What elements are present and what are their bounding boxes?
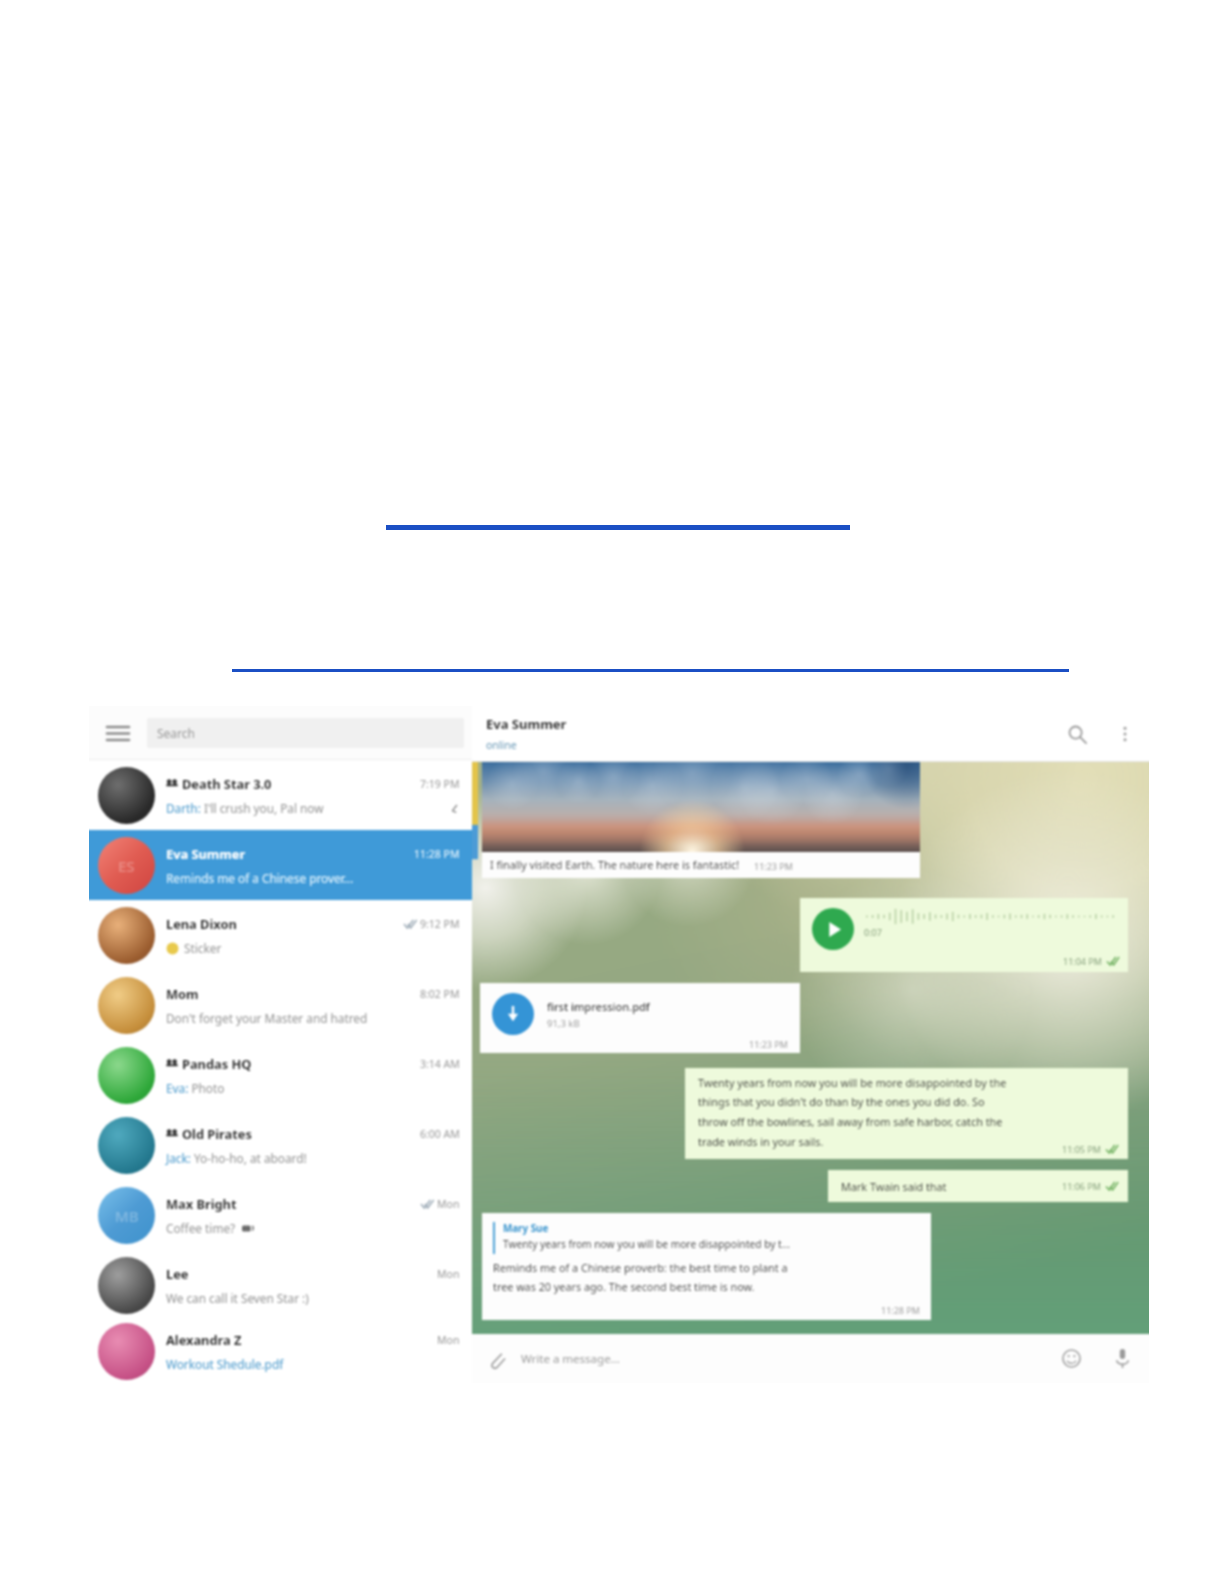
staticText: 3:14 AM <box>420 1057 460 1071</box>
staticText: 11:28 PM <box>881 1304 920 1316</box>
staticText: Workout Shedule.pdf <box>166 1356 284 1372</box>
staticText: 11:23 PM <box>754 860 793 872</box>
button[interactable]: MB <box>89 1180 472 1250</box>
button[interactable]: Search <box>1053 710 1101 758</box>
staticText: Lena Dixon <box>166 915 237 932</box>
staticText: Mom <box>166 985 199 1002</box>
staticText: 11:05 PM <box>1062 1143 1101 1155</box>
staticText: 11:06 PM <box>1062 1180 1101 1192</box>
staticText: 8:02 PM <box>420 987 460 1001</box>
staticText: Sticker <box>184 940 222 956</box>
staticText: Reminds me of a Chinese prover... <box>166 870 354 886</box>
staticText: 11:28 PM <box>414 847 460 861</box>
staticText: online <box>486 738 517 752</box>
staticText: Write a message... <box>521 1351 620 1367</box>
staticText: 6:00 AM <box>420 1127 460 1141</box>
button[interactable]: Lee <box>89 1250 472 1320</box>
button[interactable]: Death Star 3.0 <box>89 760 472 830</box>
staticText: Alexandra Z <box>166 1331 242 1348</box>
button[interactable]: Play voice message <box>800 898 1128 972</box>
staticText: Eva Summer <box>486 715 567 733</box>
staticText: 91,3 kB <box>547 1017 580 1030</box>
staticText: Reminds me of a Chinese proverb: the bes… <box>493 1260 788 1294</box>
staticText: ES <box>118 856 135 876</box>
staticText: Jack: Yo-ho-ho, at aboard! <box>166 1150 307 1166</box>
staticText: Coffee time? <box>166 1220 236 1236</box>
button[interactable]: Alexandra Z <box>89 1320 472 1383</box>
staticText: Mon <box>437 1267 460 1281</box>
staticText: 11:23 PM <box>749 1038 788 1050</box>
button[interactable]: Attach file <box>472 1334 521 1383</box>
staticText: Mon <box>437 1333 460 1347</box>
button[interactable]: Write a message... <box>521 1334 1047 1383</box>
button[interactable]: More options <box>1101 710 1149 758</box>
staticText: Twenty years from now you will be more d… <box>503 1237 790 1251</box>
button[interactable]: Emoji <box>1047 1334 1096 1383</box>
button[interactable]: Twenty years from now you will be more d… <box>685 1068 1128 1159</box>
button[interactable]: Mark Twain said that <box>828 1170 1128 1202</box>
staticText: Eva: Photo <box>166 1080 225 1096</box>
staticText: Don't forget your Master and hatred <box>166 1010 368 1026</box>
staticText: 7:19 PM <box>420 777 460 791</box>
button[interactable]: Menu <box>89 706 147 759</box>
button[interactable]: Record voice message <box>1096 1334 1149 1383</box>
staticText: Pandas HQ <box>182 1055 252 1072</box>
button[interactable]: Mary Sue <box>482 1213 931 1320</box>
button[interactable]: Mom <box>89 970 472 1040</box>
staticText: Lee <box>166 1265 189 1282</box>
staticText: Old Pirates <box>182 1125 252 1142</box>
button[interactable]: Play voice message <box>812 908 854 950</box>
staticText: Death Star 3.0 <box>182 775 272 792</box>
staticText: MB <box>115 1206 139 1226</box>
staticText: I finally visited Earth. The nature here… <box>490 857 740 872</box>
staticText: 9:12 PM <box>420 917 460 931</box>
staticText: 0:07 <box>864 926 882 938</box>
staticText: Twenty years from now you will be more d… <box>698 1075 1007 1149</box>
staticText: Eva Summer <box>166 845 246 862</box>
button[interactable]: Search <box>147 718 464 748</box>
button[interactable]: ES <box>89 830 472 900</box>
button[interactable]: Pandas HQ <box>89 1040 472 1110</box>
staticText: first impression.pdf <box>547 999 650 1014</box>
staticText: Max Bright <box>166 1195 237 1212</box>
button[interactable]: first impression.pdf <box>480 983 800 1053</box>
staticText: Mon <box>437 1197 460 1211</box>
staticText: Mary Sue <box>503 1222 549 1235</box>
staticText: Search <box>157 725 195 741</box>
staticText: Darth: I'll crush you, Pal now <box>166 800 324 816</box>
staticText: We can call it Seven Star :) <box>166 1290 309 1306</box>
button[interactable]: Old Pirates <box>89 1110 472 1180</box>
staticText: 11:04 PM <box>1063 955 1102 967</box>
button[interactable]: Lena Dixon <box>89 900 472 970</box>
button[interactable]: I finally visited Earth. The nature here… <box>482 762 920 878</box>
staticText: Mark Twain said that <box>841 1179 947 1194</box>
